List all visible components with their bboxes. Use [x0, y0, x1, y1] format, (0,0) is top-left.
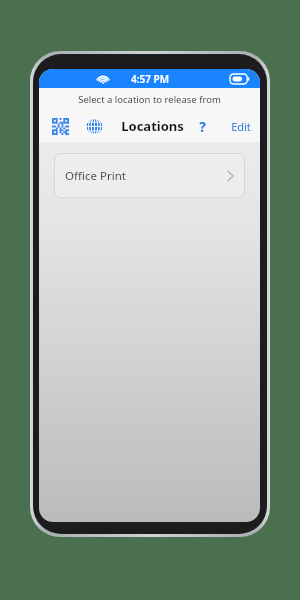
- staticText: Select a location to release from: [78, 93, 221, 106]
- button[interactable]: Scan QR code: [46, 112, 74, 140]
- staticText: ?: [199, 117, 206, 136]
- button[interactable]: Office Print: [54, 153, 245, 198]
- button[interactable]: Edit: [231, 119, 251, 134]
- staticText: 4:57 PM: [131, 72, 169, 86]
- button[interactable]: Help: [189, 113, 215, 139]
- staticText: Locations: [121, 117, 184, 135]
- staticText: Edit: [231, 119, 251, 134]
- staticText: Office Print: [65, 168, 126, 184]
- button[interactable]: Web: [80, 112, 108, 140]
